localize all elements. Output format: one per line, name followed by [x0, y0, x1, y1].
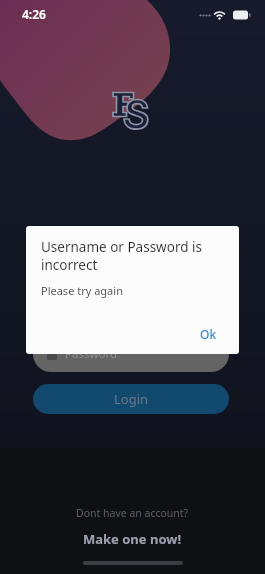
staticText: Dont have an account?: [76, 506, 189, 520]
button[interactable]: Login: [33, 384, 229, 414]
staticText: Username or Password is incorrect: [41, 238, 219, 274]
button[interactable]: Password: [33, 336, 229, 372]
staticText: Ok: [200, 326, 217, 342]
staticText: Login: [114, 390, 149, 408]
button[interactable]: Make one now!: [83, 530, 182, 548]
staticText: Password: [65, 346, 118, 362]
staticText: Please try again: [41, 283, 123, 298]
button[interactable]: Ok: [186, 319, 239, 354]
staticText: 4:26: [22, 6, 46, 22]
